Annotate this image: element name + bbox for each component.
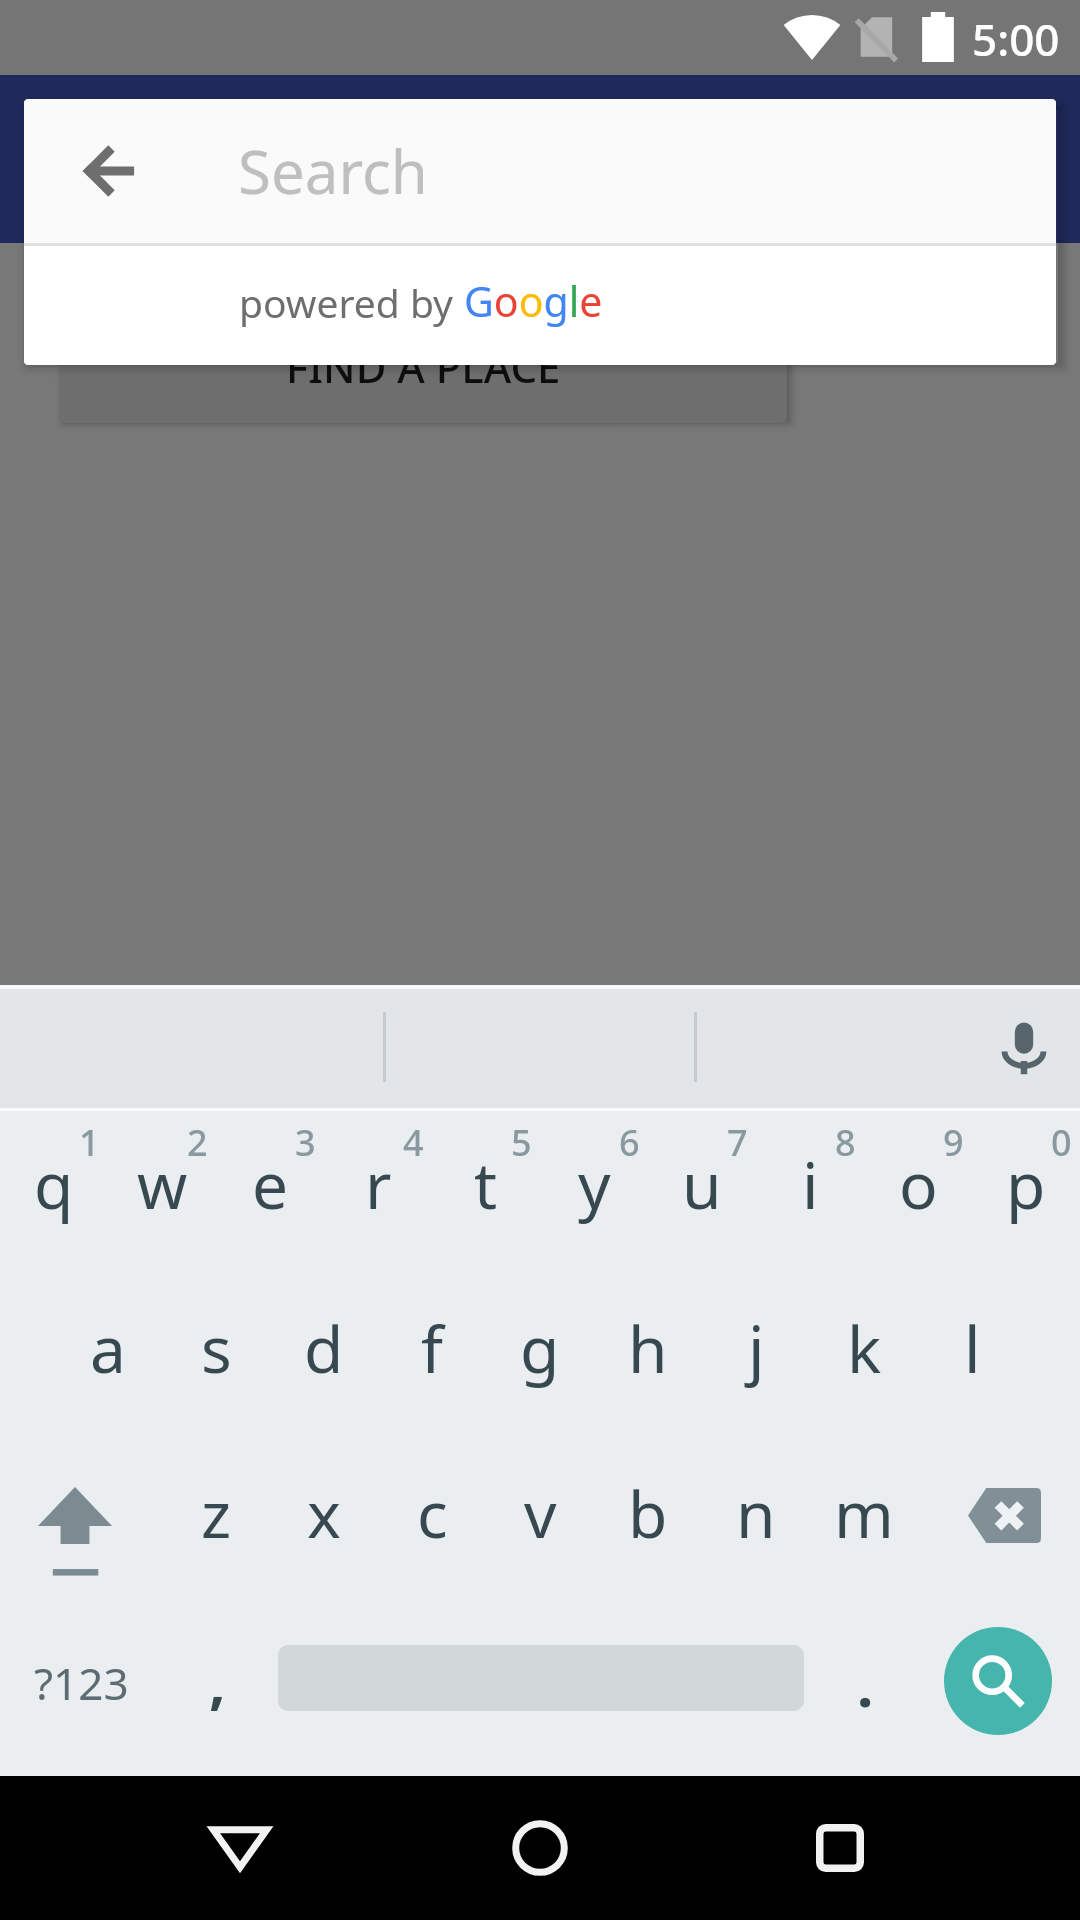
button[interactable]: s [162, 1267, 270, 1429]
staticText: 2 [187, 1118, 208, 1166]
staticText: v [524, 1470, 557, 1557]
staticText: o [899, 1141, 938, 1228]
button[interactable]: Home [480, 1776, 600, 1920]
staticText: q [34, 1141, 74, 1228]
staticText: b [628, 1470, 668, 1557]
button[interactable]: a [54, 1267, 162, 1429]
staticText: Search [238, 130, 428, 212]
button[interactable]: Search [944, 1627, 1052, 1735]
staticText: powered by [239, 276, 464, 329]
button[interactable]: v [486, 1432, 594, 1594]
button[interactable]: Backspace [918, 1432, 1080, 1594]
staticText: 7 [727, 1118, 748, 1166]
staticText: j [748, 1305, 765, 1392]
staticText: l [964, 1305, 981, 1392]
staticText: z [201, 1470, 232, 1557]
staticText: . [857, 1645, 874, 1724]
staticText: 5 [511, 1118, 532, 1166]
staticText: m [834, 1470, 894, 1557]
staticText: r [365, 1141, 392, 1228]
staticText: n [736, 1470, 776, 1557]
button[interactable]: . [810, 1599, 918, 1775]
button[interactable]: x [270, 1432, 378, 1594]
button[interactable]: Back [24, 99, 1056, 243]
staticText: u [682, 1141, 722, 1228]
staticText: 1 [79, 1118, 100, 1166]
button[interactable]: Recent apps [780, 1776, 900, 1920]
button[interactable]: z [162, 1432, 270, 1594]
button[interactable]: ?123 [0, 1599, 162, 1775]
button[interactable]: g [486, 1267, 594, 1429]
staticText: 6 [619, 1118, 640, 1166]
button[interactable]: n [702, 1432, 810, 1594]
staticText: s [201, 1305, 232, 1392]
button[interactable]: Back [38, 99, 182, 243]
staticText: w [137, 1141, 188, 1228]
button[interactable]: 5 [432, 1108, 540, 1270]
button[interactable]: , [162, 1599, 270, 1775]
button[interactable]: b [594, 1432, 702, 1594]
button[interactable]: Voice input [979, 989, 1069, 1108]
staticText: c [417, 1470, 448, 1557]
button[interactable]: 0 [972, 1108, 1080, 1270]
staticText: e [252, 1141, 289, 1228]
button[interactable]: h [594, 1267, 702, 1429]
staticText: f [421, 1305, 444, 1392]
staticText: 4 [403, 1118, 424, 1166]
staticText: t [474, 1141, 498, 1228]
button[interactable]: 9 [864, 1108, 972, 1270]
button[interactable]: 7 [648, 1108, 756, 1270]
button[interactable]: 2 [108, 1108, 216, 1270]
button[interactable]: Back [180, 1776, 300, 1920]
staticText: a [90, 1305, 126, 1392]
button[interactable]: k [810, 1267, 918, 1429]
staticText: p [1006, 1141, 1046, 1228]
staticText: 3 [295, 1118, 316, 1166]
button[interactable]: 3 [216, 1108, 324, 1270]
staticText: x [307, 1470, 341, 1557]
staticText: Google [464, 273, 603, 329]
button[interactable]: 6 [540, 1108, 648, 1270]
staticText: 8 [835, 1118, 856, 1166]
staticText: d [304, 1305, 344, 1392]
button[interactable]: 8 [756, 1108, 864, 1270]
staticText: k [847, 1305, 882, 1392]
staticText: FIND A PLACE [286, 338, 561, 395]
button[interactable]: c [378, 1432, 486, 1594]
staticText: , [209, 1642, 226, 1721]
staticText: 0 [1051, 1118, 1072, 1166]
button[interactable]: d [270, 1267, 378, 1429]
staticText: y [578, 1141, 611, 1228]
button[interactable]: 4 [324, 1108, 432, 1270]
button[interactable]: l [918, 1267, 1026, 1429]
staticText: i [802, 1141, 819, 1228]
staticText: h [628, 1305, 668, 1392]
staticText: g [520, 1305, 560, 1392]
staticText: 9 [943, 1118, 964, 1166]
button[interactable]: m [810, 1432, 918, 1594]
staticText: 5:00 [972, 9, 1060, 69]
button[interactable]: j [702, 1267, 810, 1429]
button[interactable]: 1 [0, 1108, 108, 1270]
staticText: ?123 [34, 1653, 129, 1713]
button[interactable]: FIND A PLACE [60, 330, 787, 423]
button[interactable]: Shift [0, 1432, 162, 1594]
button[interactable]: f [378, 1267, 486, 1429]
